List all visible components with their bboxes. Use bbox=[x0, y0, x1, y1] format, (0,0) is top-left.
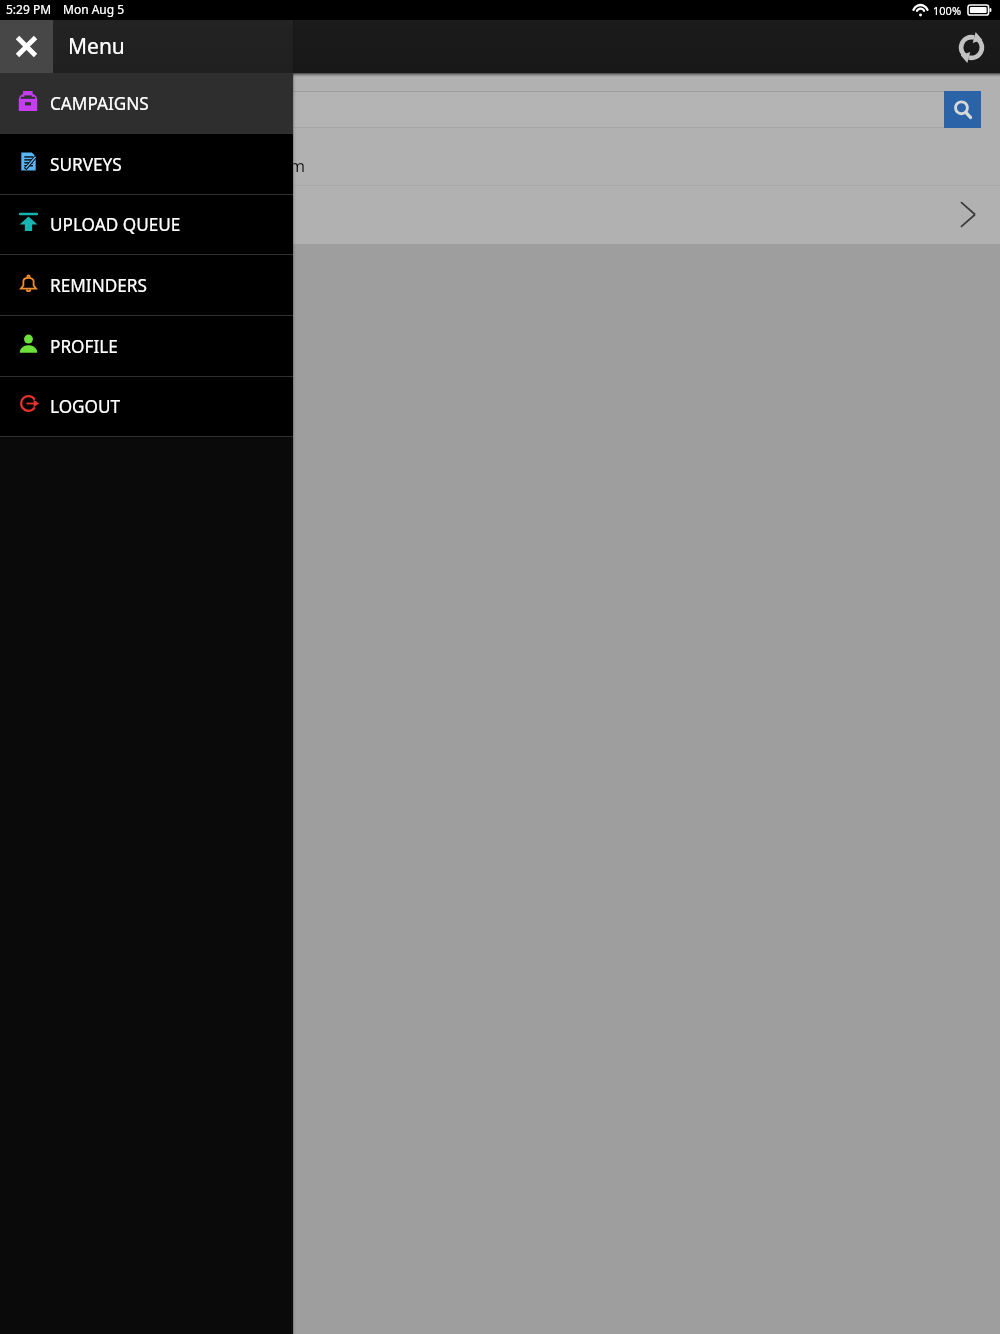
button[interactable]: LOGOUT bbox=[0, 377, 293, 436]
button[interactable]: SURVEYS bbox=[0, 134, 293, 194]
staticText: PROFILE bbox=[50, 335, 118, 358]
staticText: LOGOUT bbox=[50, 395, 121, 418]
staticText: CAMPAIGNS bbox=[50, 92, 149, 115]
button[interactable]: Search campaigns bbox=[18, 91, 944, 128]
button[interactable]: Search bbox=[944, 91, 981, 128]
staticText: UPLOAD QUEUE bbox=[50, 213, 181, 236]
staticText: REMINDERS bbox=[50, 274, 147, 297]
staticText: 5:29 PM bbox=[6, 1, 52, 17]
staticText: Mon Aug 5 bbox=[63, 1, 125, 17]
button[interactable]: Close menu bbox=[0, 20, 53, 73]
button[interactable]: PROFILE bbox=[0, 316, 293, 376]
staticText: Active bbox=[18, 204, 66, 227]
button[interactable]: REMINDERS bbox=[0, 255, 293, 315]
staticText: Maternal Health Screening Program bbox=[18, 154, 306, 177]
staticText: 100% bbox=[933, 3, 962, 18]
button[interactable]: CAMPAIGNS bbox=[0, 74, 293, 133]
button[interactable]: Refresh bbox=[949, 25, 993, 69]
staticText: SURVEYS bbox=[50, 153, 122, 176]
button[interactable]: UPLOAD QUEUE bbox=[0, 195, 293, 254]
button[interactable]: Active bbox=[0, 186, 1000, 244]
staticText: Menu bbox=[68, 32, 125, 61]
